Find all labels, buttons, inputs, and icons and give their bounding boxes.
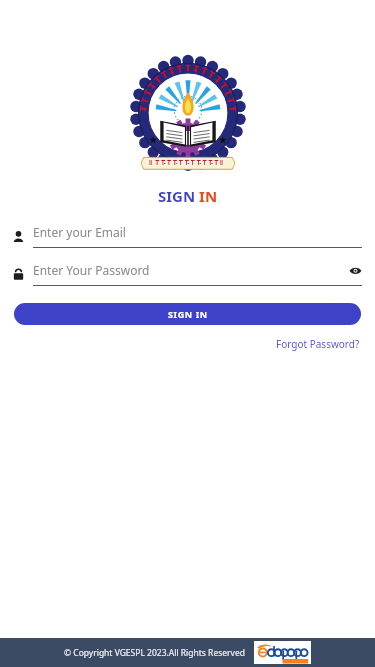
staticText: Enter Your Password (33, 262, 349, 278)
button[interactable]: Forgot Password? (274, 335, 362, 353)
button[interactable]: eduplus (254, 641, 311, 664)
staticText: SIGN IN (158, 186, 218, 206)
other: Enter Your Password (12, 268, 25, 281)
other: College logo (124, 61, 252, 175)
staticText: SIGN IN (168, 308, 208, 320)
staticText: © Copyright VGESPL 2023.All Rights Reser… (64, 647, 245, 659)
staticText: Enter your Email (33, 224, 362, 240)
button[interactable]: Show password (349, 264, 362, 277)
button[interactable]: SIGN IN (14, 303, 361, 325)
button[interactable]: Enter Your Password (12, 262, 362, 286)
staticText: Forgot Password? (276, 337, 360, 351)
button[interactable]: Enter your Email (12, 224, 362, 248)
other: Enter your Email (12, 230, 25, 243)
